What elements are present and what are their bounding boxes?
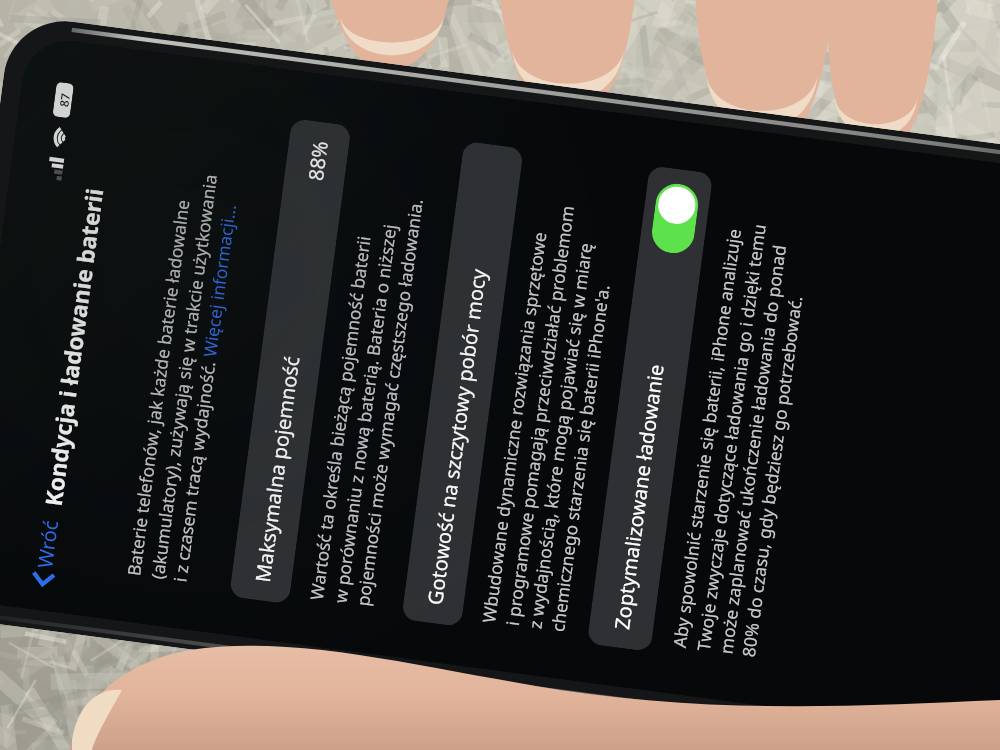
staticText: Maksymalna pojemność (249, 354, 305, 584)
staticText: Wbudowane dynamiczne rozwiązania sprzęto… (476, 201, 624, 633)
staticText: Wartość ta określa bieżącą pojemność bat… (304, 190, 428, 607)
other: Zoptymalizowane ładowanie (649, 181, 701, 256)
staticText: 87 (55, 91, 73, 108)
staticText: 88% (301, 139, 333, 182)
staticText: Kondycja i ładowanie baterii (38, 186, 110, 508)
button[interactable]: Gotowość na szczytowy pobór mocy (401, 141, 524, 627)
button[interactable]: Wróć (28, 513, 64, 593)
button[interactable]: Maksymalna pojemność (229, 118, 352, 604)
staticText: Baterie telefonów, jak każde baterie ład… (121, 169, 245, 583)
staticText: Gotowość na szczytowy pobór mocy (421, 266, 492, 606)
staticText: Aby spowolnić starzenie się baterii, iPh… (667, 218, 816, 658)
staticText: Wróć (31, 518, 63, 570)
staticText: Zoptymalizowane ładowanie (608, 362, 669, 631)
button[interactable]: Zoptymalizowane ładowanie (587, 165, 713, 652)
